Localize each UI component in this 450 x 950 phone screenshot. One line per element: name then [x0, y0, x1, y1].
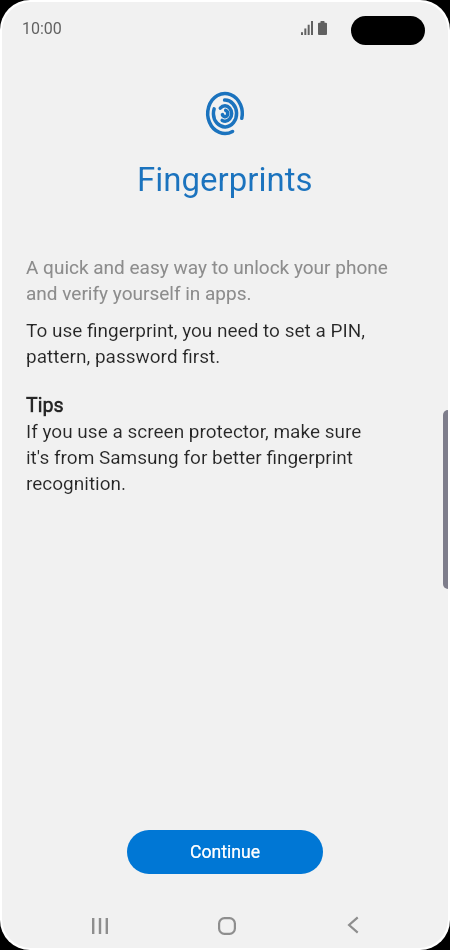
button[interactable]: Back	[327, 899, 379, 948]
staticText: Fingerprints	[137, 161, 313, 199]
staticText: A quick and easy way to unlock your phon…	[26, 253, 388, 305]
staticText: 10:00	[22, 18, 62, 38]
staticText: To use fingerprint, you need to set a PI…	[26, 316, 365, 368]
staticText: Tips	[26, 391, 64, 417]
button[interactable]: Continue	[127, 830, 323, 874]
button[interactable]: Home	[201, 900, 253, 948]
staticText: If you use a screen protector, make sure…	[26, 417, 362, 495]
button[interactable]: Recent apps	[74, 900, 126, 948]
staticText: Continue	[190, 842, 260, 863]
